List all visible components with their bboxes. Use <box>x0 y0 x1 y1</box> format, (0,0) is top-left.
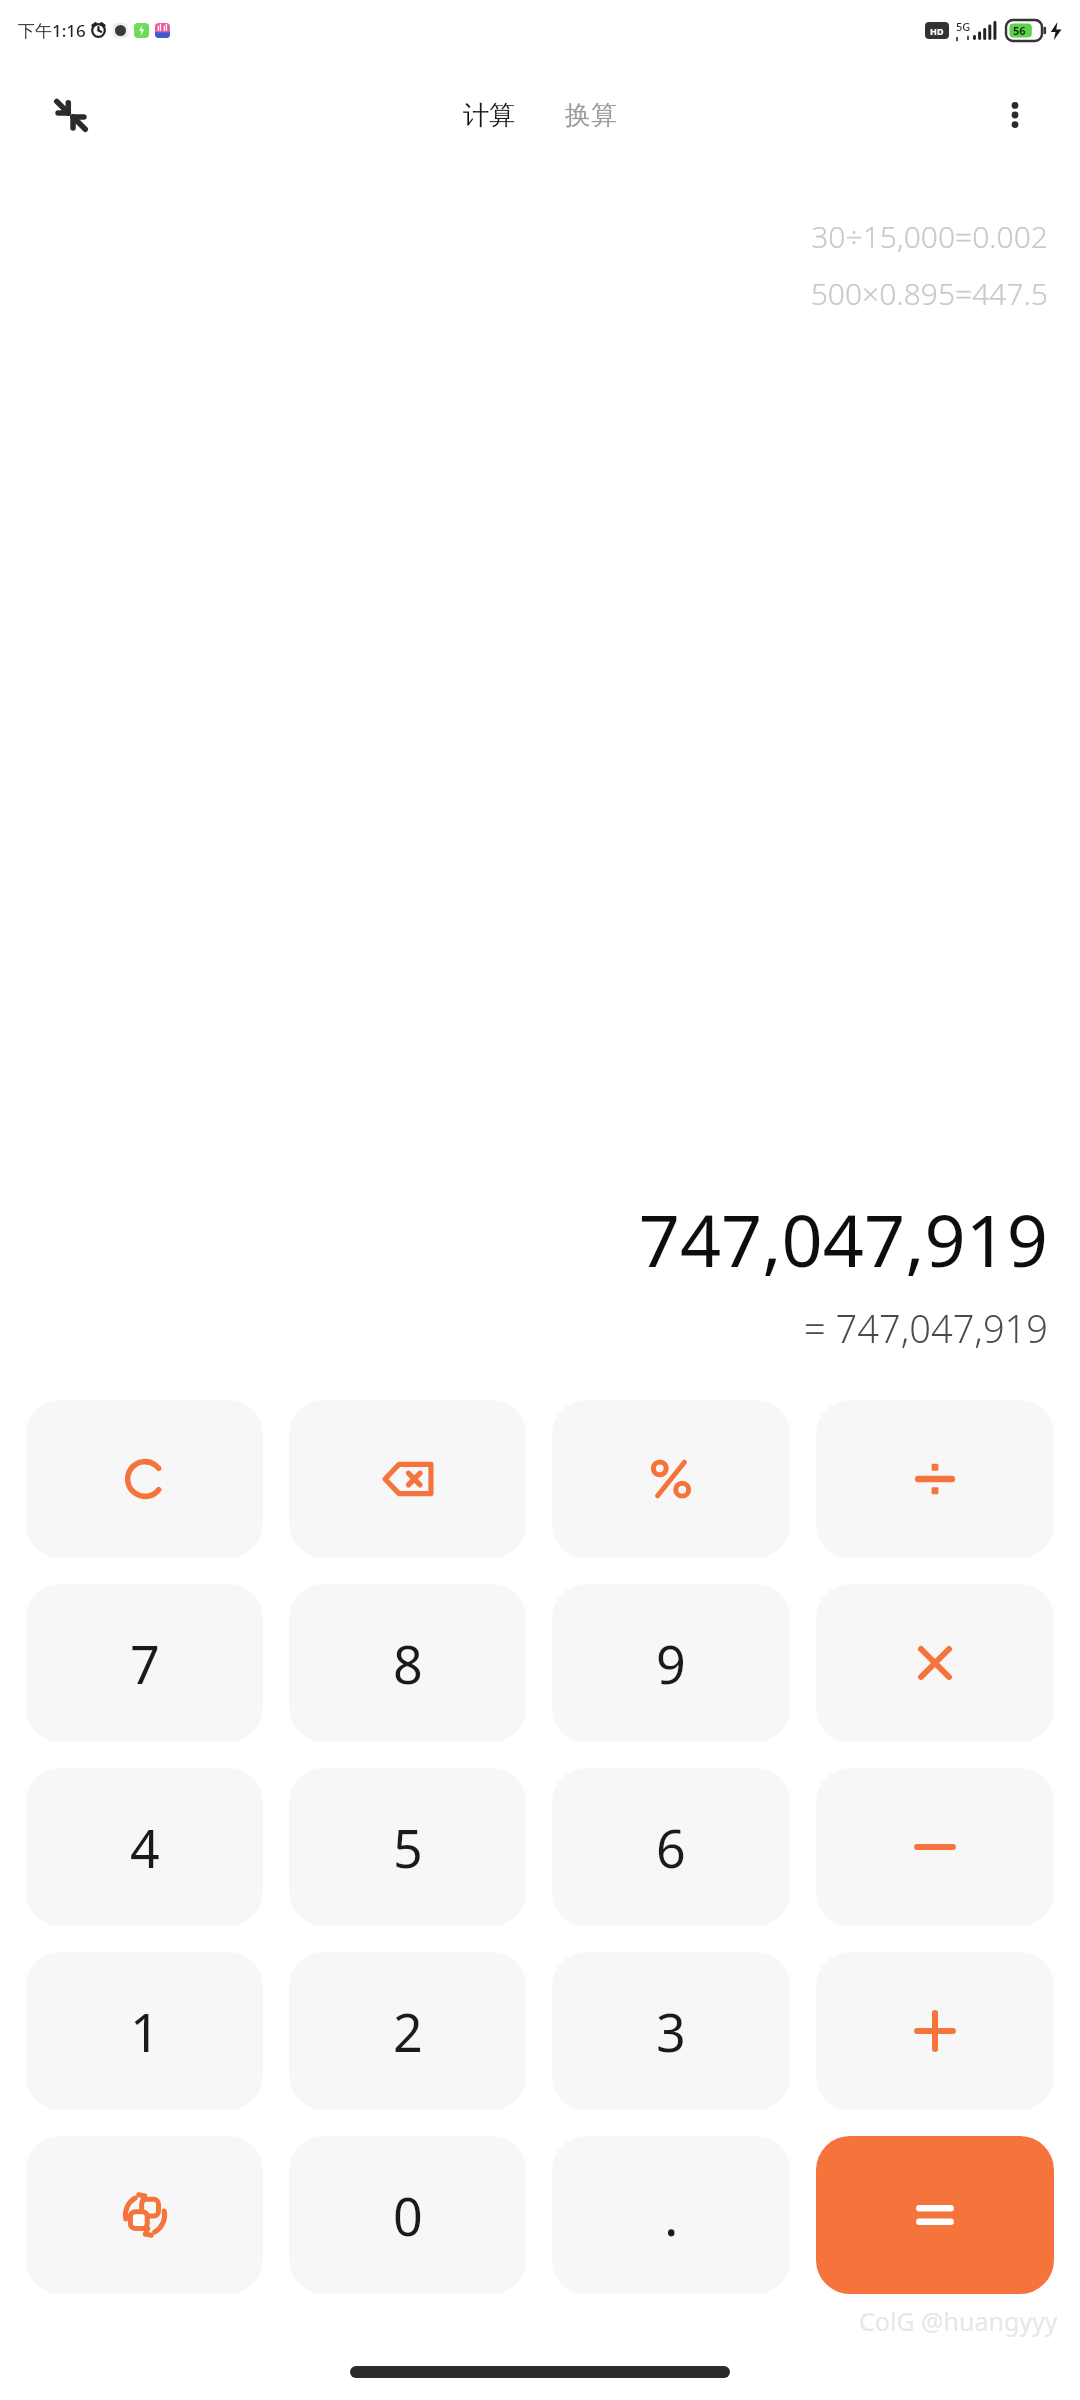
button[interactable]: Backspace <box>289 1400 526 1558</box>
staticText: 5 <box>393 1812 423 1883</box>
staticText: ColG @huangyyy <box>859 2304 1058 2338</box>
staticText: 计算 <box>463 99 515 132</box>
button[interactable]: 7 <box>26 1584 263 1742</box>
staticText: HD <box>930 25 944 37</box>
button[interactable]: 9 <box>552 1584 790 1742</box>
staticText: 下午1:16 <box>18 19 86 42</box>
button[interactable]: 0 <box>289 2136 526 2294</box>
staticText: 500×0.895=447.5 <box>810 273 1048 314</box>
button[interactable]: Minus <box>816 1768 1054 1926</box>
staticText: 5G <box>956 19 971 34</box>
staticText: 换算 <box>565 99 617 132</box>
button[interactable]: 8 <box>289 1584 526 1742</box>
button[interactable]: 3 <box>552 1952 790 2110</box>
button[interactable]: Clear <box>26 1400 263 1558</box>
button[interactable]: Equals <box>816 2136 1054 2294</box>
button[interactable]: Percent <box>552 1400 790 1558</box>
staticText: 2 <box>393 1996 423 2067</box>
button[interactable]: Divide <box>816 1400 1054 1558</box>
staticText: 8 <box>393 1628 423 1699</box>
button[interactable]: More options <box>986 86 1044 144</box>
button[interactable]: 换算 <box>555 91 627 140</box>
button[interactable]: Collapse <box>42 86 100 144</box>
staticText: 747,047,919 <box>638 1190 1048 1288</box>
button[interactable]: . <box>552 2136 790 2294</box>
button[interactable]: Convert <box>26 2136 263 2294</box>
staticText: 7 <box>130 1628 160 1699</box>
staticText: 56 <box>1013 23 1026 38</box>
staticText: 30÷15,000=0.002 <box>811 216 1048 257</box>
staticText: = 747,047,919 <box>804 1302 1048 1354</box>
button[interactable]: Multiply <box>816 1584 1054 1742</box>
button[interactable]: 2 <box>289 1952 526 2110</box>
staticText: 0 <box>393 2180 423 2251</box>
staticText: 1 <box>130 1996 160 2067</box>
button[interactable]: 6 <box>552 1768 790 1926</box>
button[interactable]: Plus <box>816 1952 1054 2110</box>
button[interactable]: 4 <box>26 1768 263 1926</box>
button[interactable]: 5 <box>289 1768 526 1926</box>
staticText: 6 <box>656 1812 686 1883</box>
staticText: 4 <box>130 1812 160 1883</box>
button[interactable]: 计算 <box>453 91 525 140</box>
button[interactable]: 1 <box>26 1952 263 2110</box>
staticText: 9 <box>656 1628 686 1699</box>
staticText: 3 <box>656 1996 686 2067</box>
staticText: . <box>664 2178 679 2252</box>
